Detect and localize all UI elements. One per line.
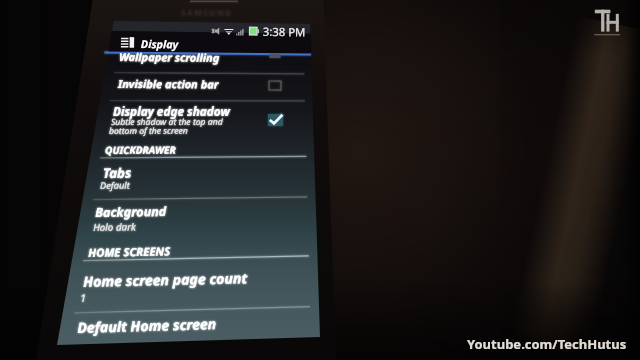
staticText: Home screen page count	[83, 268, 247, 291]
staticText: Default	[100, 179, 130, 192]
staticText: bottom of the screen	[109, 125, 188, 137]
staticText: Home screen page count	[83, 268, 247, 291]
staticText: QUICKDRAWER	[105, 143, 176, 157]
staticText: Display	[141, 36, 179, 51]
button[interactable]: Unchecked	[269, 81, 281, 90]
staticText: Default Home screen	[77, 314, 216, 337]
staticText: Display edge shadow	[113, 103, 230, 119]
staticText: Tabs	[103, 164, 132, 182]
staticText: 3:38 PM	[263, 24, 306, 39]
staticText: QUICKDRAWER	[105, 143, 176, 157]
staticText: Wallpaper scrolling	[119, 49, 220, 65]
staticText: SAMSUNG	[181, 7, 233, 19]
staticText: Subtle shadow at the top and	[111, 116, 223, 128]
staticText: Default	[100, 179, 130, 192]
staticText: HOME SCREENS	[88, 243, 170, 260]
staticText: Holo dark	[93, 220, 136, 234]
staticText: Display	[141, 36, 179, 51]
button[interactable]: Checked	[268, 114, 283, 126]
staticText: HOME SCREENS	[88, 243, 170, 260]
staticText: Wallpaper scrolling	[119, 49, 220, 65]
staticText: bottom of the screen	[109, 125, 188, 137]
button[interactable]: Unchecked	[269, 81, 281, 90]
other: TechHut logo	[593, 7, 623, 37]
staticText: Invisible action bar	[118, 76, 219, 91]
staticText: Default Home screen	[77, 314, 216, 337]
button[interactable]: Checked	[268, 114, 283, 126]
staticText: Youtube.com/TechHutus	[467, 335, 627, 353]
staticText: 1	[80, 291, 86, 305]
staticText: Display edge shadow	[113, 103, 230, 119]
staticText: 1	[80, 291, 86, 305]
staticText: Subtle shadow at the top and	[111, 116, 223, 128]
staticText: Background	[95, 203, 167, 221]
staticText: Holo dark	[93, 220, 136, 234]
staticText: Tabs	[103, 164, 132, 182]
staticText: 3:38 PM	[263, 24, 306, 39]
staticText: Invisible action bar	[118, 76, 219, 91]
staticText: Background	[95, 203, 167, 221]
